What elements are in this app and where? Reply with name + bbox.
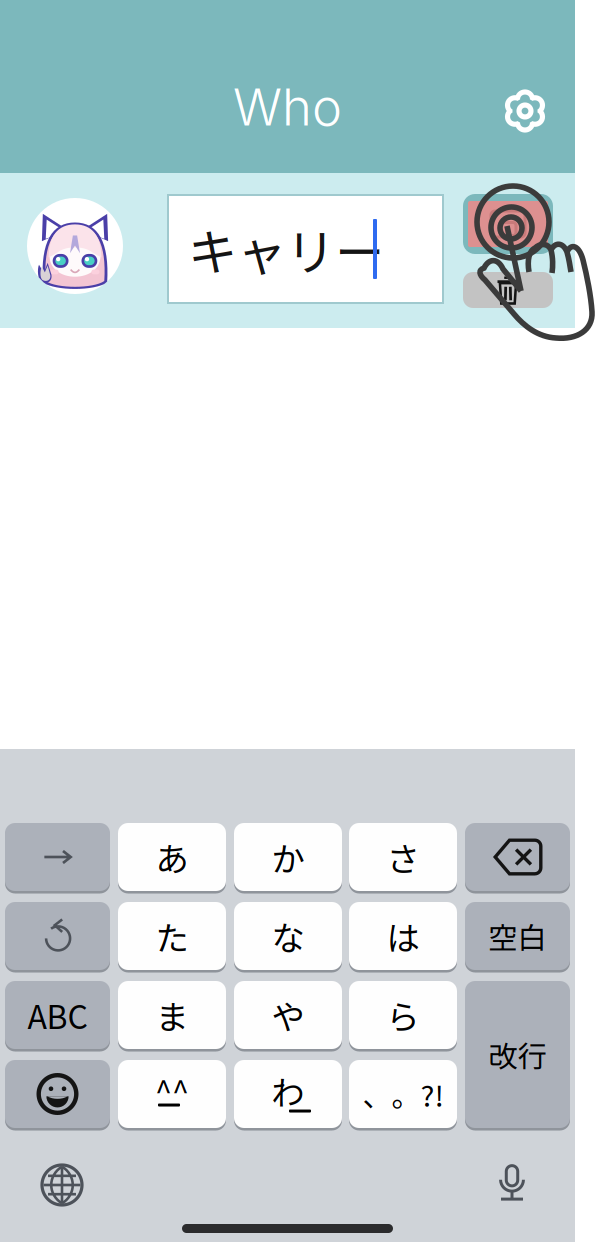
button[interactable]: か	[234, 823, 342, 891]
button[interactable]: あ	[118, 823, 226, 891]
staticText: な	[271, 912, 304, 960]
staticText: た	[155, 912, 188, 960]
button[interactable]: さ	[349, 823, 457, 891]
staticText: わ	[271, 1067, 304, 1115]
staticText: 空白	[488, 915, 546, 957]
button[interactable]: ABC	[5, 981, 110, 1049]
button[interactable]: Photo	[463, 194, 553, 254]
staticText: 改行	[488, 1033, 546, 1076]
staticText: ABC	[27, 992, 87, 1038]
button[interactable]: 、。?!	[349, 1060, 457, 1128]
button[interactable]: Delete	[463, 272, 553, 308]
staticText: ら	[386, 991, 419, 1039]
staticText: ま	[155, 991, 188, 1039]
button[interactable]: Next keyboard	[32, 1155, 92, 1215]
button[interactable]: ^^	[118, 1060, 226, 1128]
button[interactable]: や	[234, 981, 342, 1049]
button[interactable]: わ	[234, 1060, 342, 1128]
button[interactable]: ら	[349, 981, 457, 1049]
button[interactable]: Delete	[465, 823, 570, 891]
button[interactable]: は	[349, 902, 457, 970]
button[interactable]: Settings	[487, 83, 563, 139]
button[interactable]: Emoji	[5, 1060, 110, 1128]
staticText: さ	[386, 833, 419, 881]
button[interactable]: Undo	[5, 902, 110, 970]
staticText: 、。?!	[362, 1073, 443, 1115]
staticText: は	[386, 912, 419, 960]
staticText: あ	[155, 833, 188, 881]
button[interactable]: Dictation	[482, 1155, 542, 1215]
staticText: ^^	[155, 1068, 189, 1112]
button[interactable]: Next candidate	[5, 823, 110, 891]
button[interactable]: た	[118, 902, 226, 970]
button[interactable]: な	[234, 902, 342, 970]
staticText: Who	[233, 76, 342, 138]
button[interactable]: ま	[118, 981, 226, 1049]
staticText: か	[271, 833, 304, 881]
staticText: や	[271, 991, 304, 1039]
staticText: キャリー	[188, 213, 384, 285]
button[interactable]: 改行	[465, 981, 570, 1128]
button[interactable]: 空白	[465, 902, 570, 970]
